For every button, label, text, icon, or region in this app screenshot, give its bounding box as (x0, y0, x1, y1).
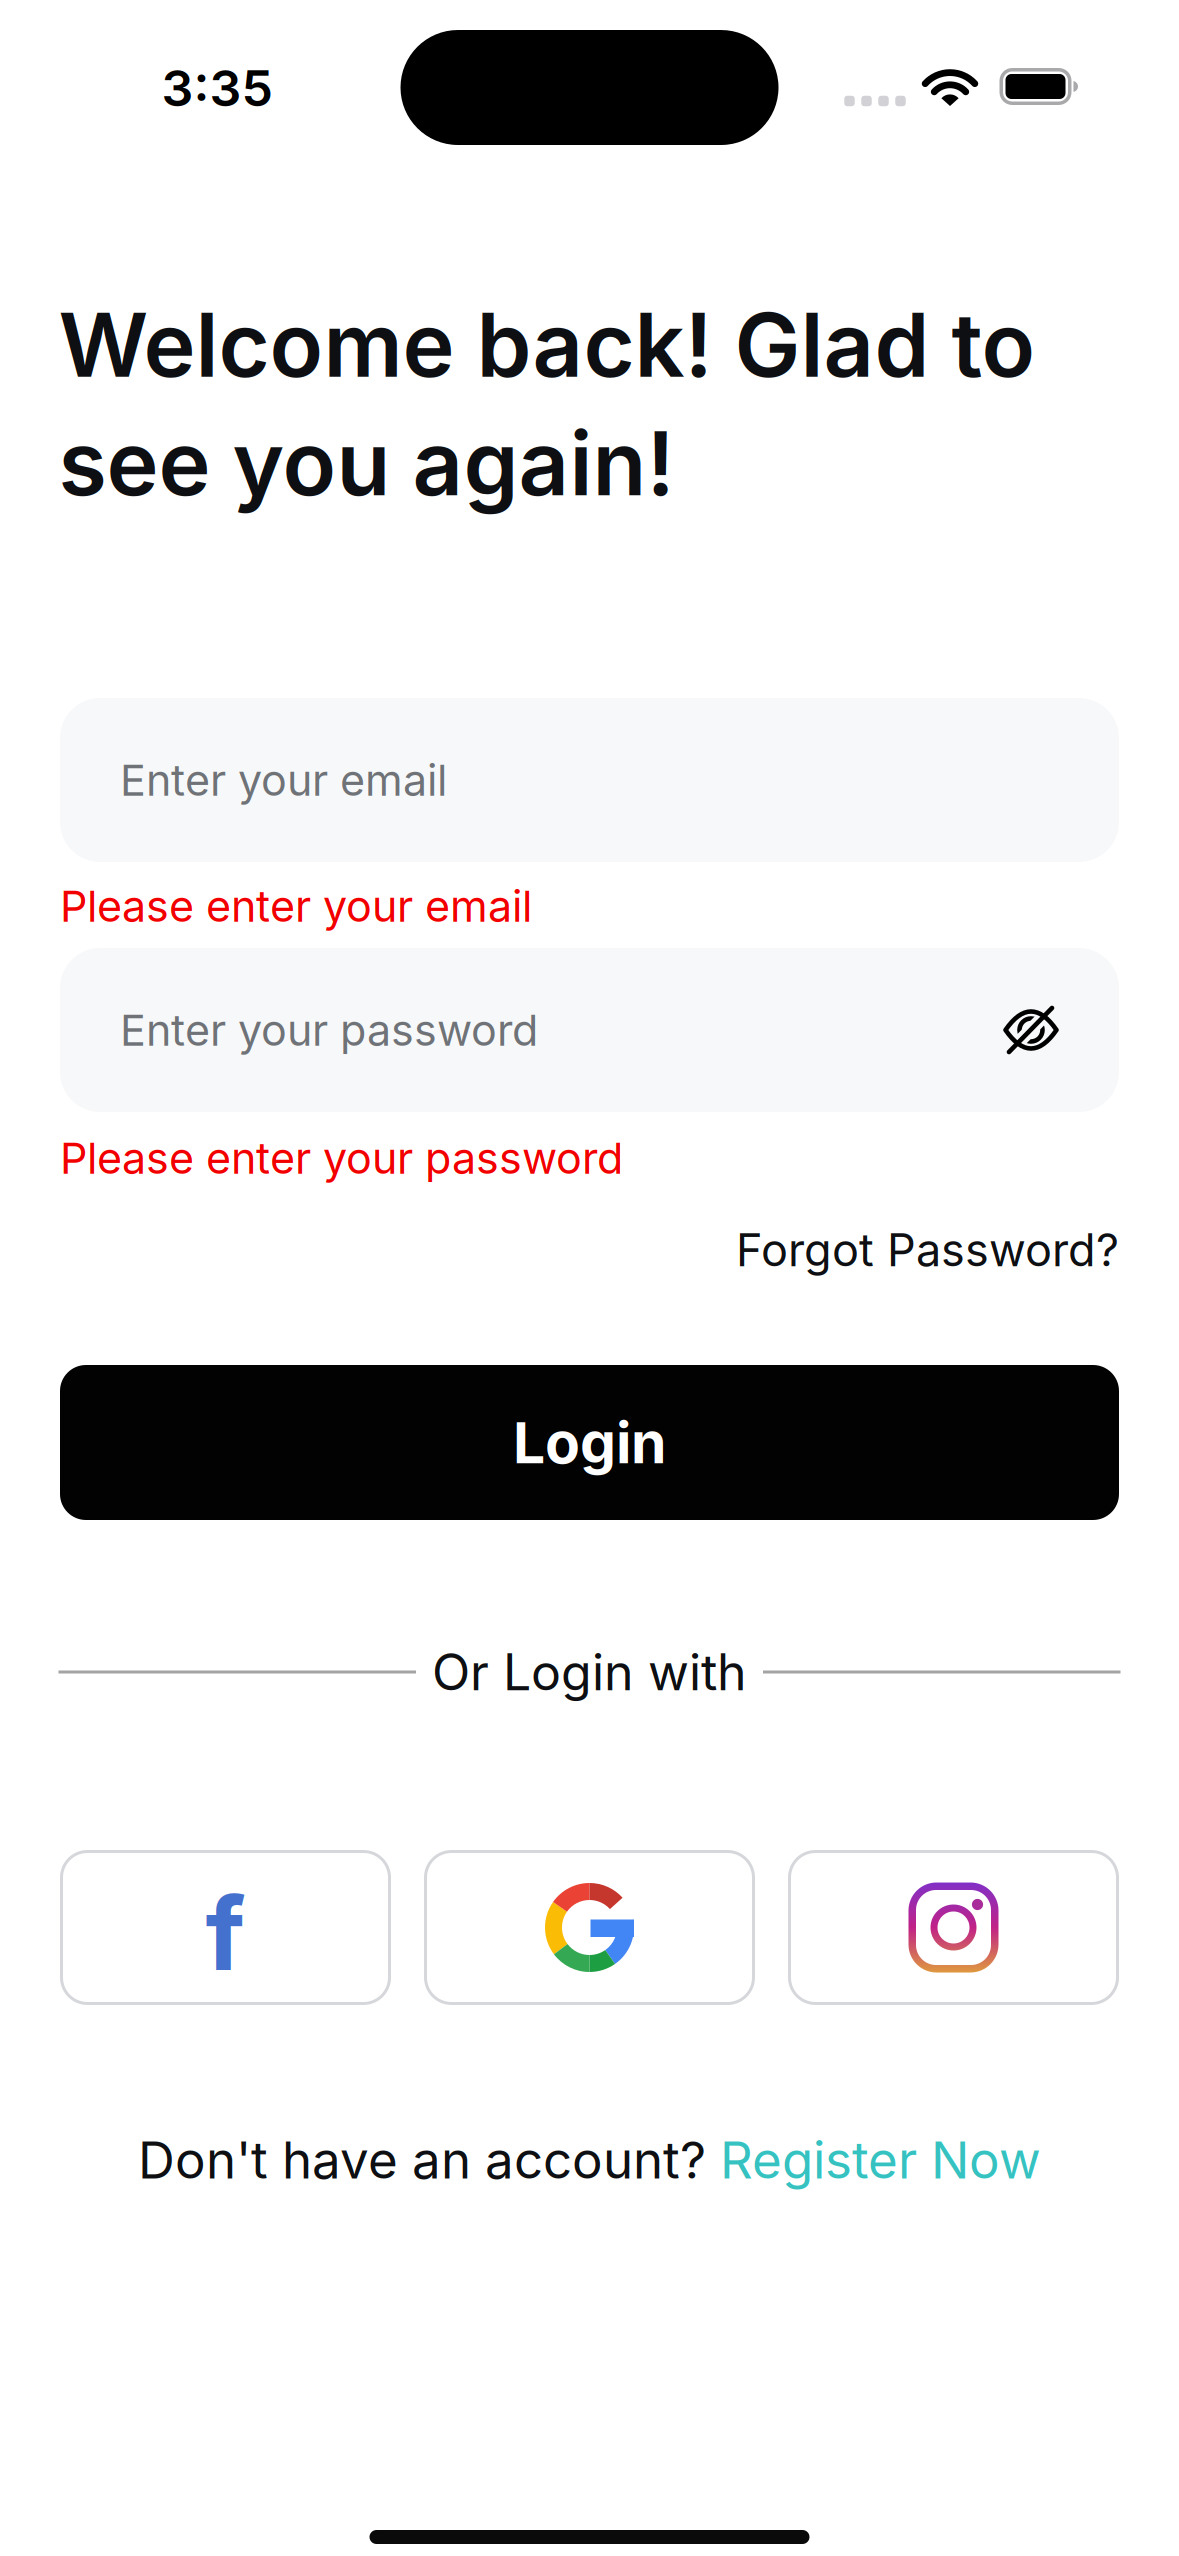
button[interactable] (424, 1850, 755, 2005)
button[interactable]: Login (60, 1365, 1119, 1520)
staticText: 3:35 (161, 58, 272, 118)
staticText: f (205, 1873, 245, 1994)
button[interactable] (999, 998, 1063, 1062)
staticText: Forgot Password? (736, 1223, 1119, 1277)
staticText: Enter your email (120, 754, 447, 806)
button[interactable] (788, 1850, 1119, 2005)
staticText: Login (513, 1408, 666, 1477)
button[interactable]: Forgot Password? (736, 1223, 1119, 1277)
staticText: Or Login with (432, 1642, 747, 1702)
staticText: Don't have an account? (138, 2129, 706, 2191)
button[interactable]: Don't have an account? (138, 2129, 1041, 2191)
button[interactable]: f (60, 1850, 391, 2005)
staticText: Register Now (720, 2129, 1041, 2191)
staticText: Welcome back! Glad to see you again! (58, 291, 1035, 516)
staticText: Please enter your password (60, 1132, 623, 1184)
staticText: Enter your password (120, 1004, 538, 1056)
staticText: Please enter your email (60, 880, 532, 932)
